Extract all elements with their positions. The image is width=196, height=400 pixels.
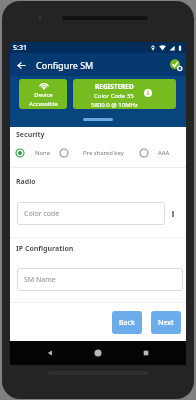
button[interactable]: Pre shared key bbox=[59, 147, 124, 159]
button[interactable]: Next bbox=[151, 311, 181, 334]
staticText: IP Configuration bbox=[16, 244, 74, 254]
button[interactable]: Home bbox=[90, 345, 106, 361]
button[interactable]: SM Name bbox=[17, 268, 183, 291]
button[interactable]: Device bbox=[19, 79, 67, 109]
button[interactable]: Color code bbox=[17, 202, 165, 225]
staticText: Color Code 35 bbox=[94, 92, 134, 100]
staticText: 5:31 bbox=[13, 43, 27, 53]
staticText: Device bbox=[34, 91, 53, 99]
button[interactable]: None bbox=[15, 147, 51, 159]
staticText: Configure SM bbox=[36, 59, 94, 71]
button[interactable]: AAA bbox=[139, 147, 170, 159]
staticText: SM Name bbox=[24, 275, 56, 285]
staticText: Accessible bbox=[29, 100, 58, 108]
staticText: Color code bbox=[24, 209, 60, 219]
button[interactable]: Back bbox=[42, 345, 58, 361]
staticText: 5800.0 @ 10MHz bbox=[91, 101, 138, 109]
staticText: Radio bbox=[16, 177, 36, 187]
staticText: AAA bbox=[158, 149, 170, 157]
button[interactable]: Navigate up bbox=[13, 57, 29, 73]
button[interactable]: More options bbox=[165, 202, 181, 225]
staticText: Security bbox=[16, 130, 45, 140]
button[interactable]: Device connected bbox=[168, 57, 184, 73]
staticText: Back bbox=[119, 318, 135, 328]
staticText: None bbox=[35, 149, 51, 157]
staticText: Pre shared key bbox=[83, 149, 124, 157]
button[interactable]: REGISTERED bbox=[73, 79, 176, 109]
button[interactable]: Recent apps bbox=[138, 345, 154, 361]
staticText: REGISTERED bbox=[95, 82, 134, 91]
staticText: Next bbox=[158, 318, 174, 328]
button[interactable]: Back bbox=[112, 311, 142, 334]
